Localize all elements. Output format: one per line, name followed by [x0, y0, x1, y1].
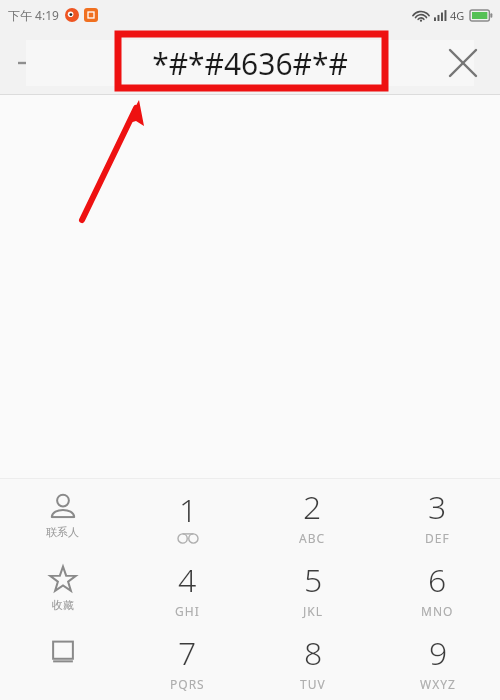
button[interactable]: 2	[250, 479, 375, 552]
button[interactable]: 3	[375, 479, 500, 552]
staticText: 4	[178, 558, 197, 602]
button[interactable]: Call log	[0, 625, 125, 698]
button[interactable]: 9	[375, 625, 500, 698]
button[interactable]: 5	[250, 552, 375, 625]
button[interactable]: Add contact	[8, 38, 58, 88]
staticText: *#*#4636#*#	[152, 43, 348, 84]
staticText: 9	[429, 631, 448, 675]
button[interactable]: 4	[125, 552, 250, 625]
staticText: MNO	[421, 603, 454, 619]
staticText: 5	[304, 558, 323, 602]
staticText: 下午 4:19	[8, 7, 59, 23]
button[interactable]: Close	[438, 38, 488, 88]
staticText: TUV	[300, 676, 326, 692]
button[interactable]: *#*#4636#*#	[26, 40, 474, 86]
staticText: GHI	[175, 603, 200, 619]
staticText: 1	[179, 488, 198, 532]
button[interactable]: 收藏	[0, 552, 125, 625]
staticText: WXYZ	[420, 676, 456, 692]
button[interactable]: 6	[375, 552, 500, 625]
staticText: 7	[178, 631, 197, 675]
staticText: 6	[428, 558, 447, 602]
staticText: JKL	[303, 603, 323, 619]
staticText: 8	[304, 631, 323, 675]
button[interactable]: 联系人	[0, 479, 125, 552]
staticText: 联系人	[46, 525, 79, 539]
button[interactable]: 7	[125, 625, 250, 698]
button[interactable]: 8	[250, 625, 375, 698]
staticText: 4G	[450, 8, 465, 23]
button[interactable]: 1	[125, 479, 250, 552]
staticText: 2	[303, 485, 322, 529]
staticText: 收藏	[52, 598, 74, 612]
staticText: DEF	[425, 530, 450, 546]
staticText: 3	[428, 485, 447, 529]
staticText: ABC	[299, 530, 326, 546]
staticText: PQRS	[170, 676, 205, 692]
